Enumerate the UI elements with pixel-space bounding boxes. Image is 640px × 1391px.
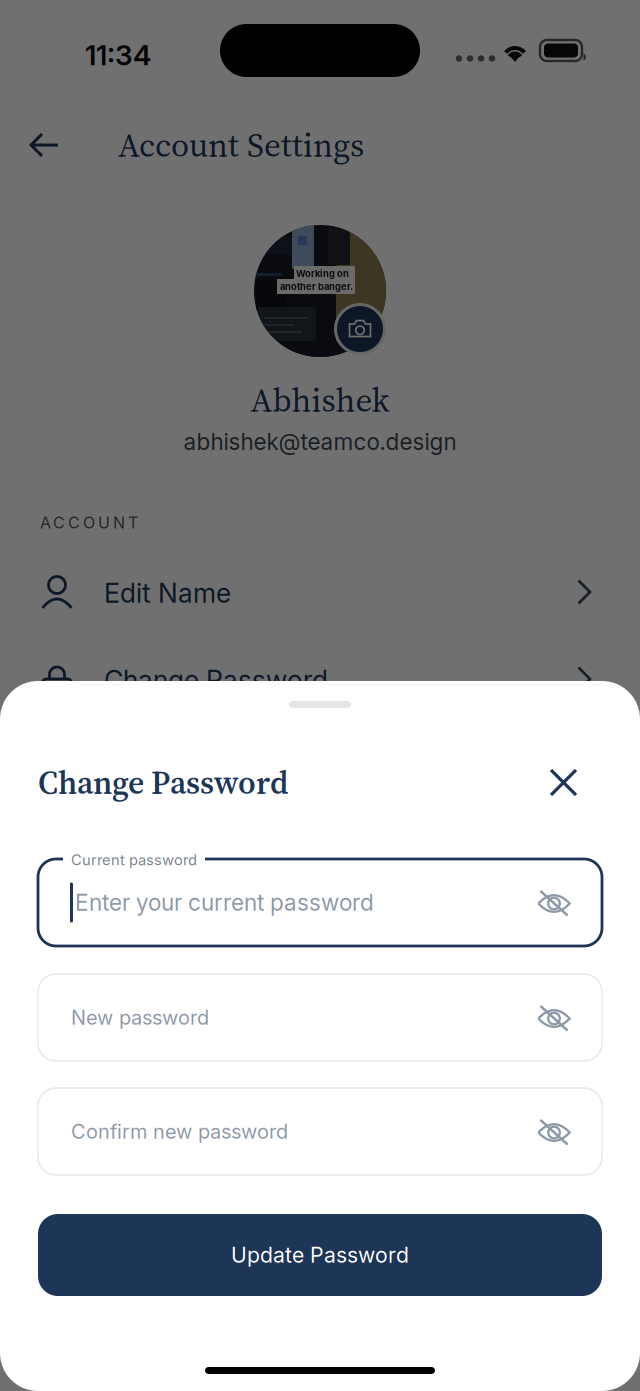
- button[interactable]: Update Password: [38, 1214, 602, 1296]
- staticText: Edit Name: [104, 577, 231, 609]
- staticText: another banger.: [280, 281, 353, 292]
- staticText: Abhishek: [250, 377, 389, 423]
- button[interactable]: Change photo: [334, 303, 386, 355]
- staticText: Account Settings: [118, 122, 364, 168]
- staticText: Change Password: [104, 664, 328, 696]
- button[interactable]: Back: [16, 119, 73, 171]
- staticText: Current password: [71, 851, 197, 869]
- button[interactable]: New password: [38, 974, 602, 1061]
- staticText: 11:34: [85, 38, 151, 72]
- staticText: ACCOUNT: [40, 513, 138, 532]
- button[interactable]: Close: [537, 756, 590, 809]
- staticText: Enter your current password: [75, 889, 374, 916]
- staticText: Working on: [296, 268, 349, 279]
- button[interactable]: Edit Name: [0, 553, 640, 633]
- button[interactable]: Confirm new password: [38, 1088, 602, 1175]
- staticText: Confirm new password: [71, 1119, 288, 1144]
- staticText: Change Password: [38, 761, 288, 804]
- staticText: abhishek@teamco.design: [183, 428, 456, 455]
- staticText: Update Password: [231, 1242, 409, 1268]
- button[interactable]: Change Password: [0, 640, 640, 720]
- staticText: New password: [71, 1005, 209, 1030]
- button[interactable]: Enter your current password: [38, 859, 602, 946]
